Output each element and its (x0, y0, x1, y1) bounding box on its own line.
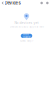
staticText: Add device (23, 33, 30, 39)
button[interactable]: Add device (21, 34, 32, 38)
button[interactable]: Add device (46, 2, 49, 4)
staticText: Devices you add appear here (9, 25, 43, 28)
staticText: No devices yet (14, 21, 38, 25)
staticText: Devices (4, 0, 20, 6)
button[interactable]: Search (40, 2, 43, 4)
staticText: Need help? (20, 39, 33, 43)
button[interactable]: Devices (2, 0, 20, 6)
